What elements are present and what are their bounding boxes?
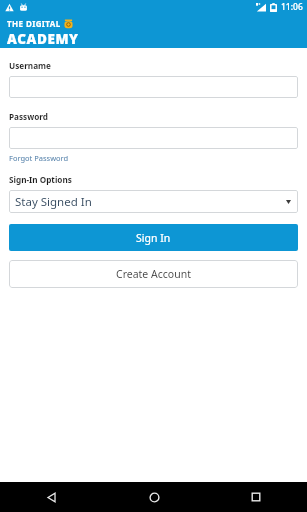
staticText: Password (9, 111, 49, 122)
staticText: ACADEMY (7, 30, 79, 48)
button[interactable]: Home (103, 482, 205, 512)
button[interactable] (9, 76, 298, 98)
button[interactable] (9, 127, 298, 149)
button[interactable]: Stay Signed In (9, 190, 298, 213)
button[interactable]: Forgot Password (9, 152, 69, 164)
staticText: THE DIGITAL (7, 18, 61, 29)
button[interactable]: Recent apps (205, 482, 307, 512)
button[interactable]: Sign In (9, 224, 298, 251)
button[interactable]: Back (0, 482, 103, 512)
staticText: Stay Signed In (15, 194, 92, 210)
staticText: 11:06 (281, 1, 303, 13)
staticText: Username (9, 60, 51, 71)
staticText: Create Account (116, 267, 191, 281)
staticText: Sign In (136, 231, 171, 245)
button[interactable]: Create Account (9, 260, 298, 288)
staticText: Forgot Password (9, 153, 69, 163)
staticText: Sign-In Options (9, 174, 72, 185)
